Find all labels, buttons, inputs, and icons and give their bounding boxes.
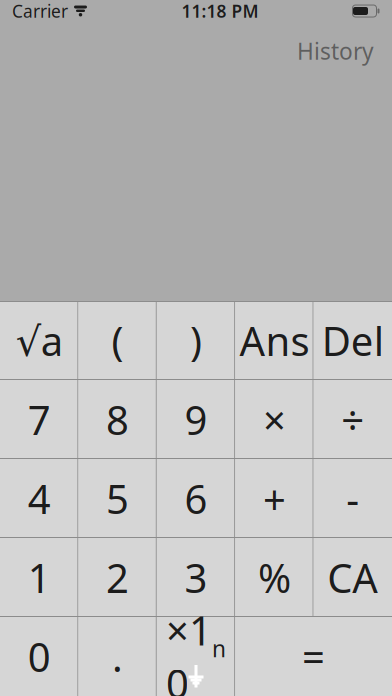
button[interactable]: 0 — [0, 617, 78, 696]
staticText: - — [346, 472, 359, 525]
staticText: History — [297, 36, 374, 66]
button[interactable]: 2 — [78, 538, 157, 617]
staticText: Del — [322, 314, 384, 367]
button[interactable]: ) — [157, 301, 235, 380]
button[interactable]: CA — [314, 538, 392, 617]
staticText: ( — [112, 314, 124, 367]
staticText: 1 — [28, 551, 51, 604]
button[interactable]: Del — [314, 301, 392, 380]
button[interactable]: = — [235, 617, 392, 696]
staticText: Ans — [239, 314, 309, 367]
staticText: = — [302, 630, 325, 683]
staticText: √a — [16, 314, 63, 367]
staticText: Carrier — [12, 0, 68, 22]
staticText: CA — [327, 551, 378, 604]
button[interactable]: 1 — [0, 538, 78, 617]
button[interactable]: % — [235, 538, 314, 617]
button[interactable]: 7 — [0, 380, 78, 459]
staticText: ) — [190, 314, 202, 367]
button[interactable]: 9 — [157, 380, 235, 459]
button[interactable]: + — [235, 459, 314, 538]
staticText: 8 — [106, 393, 129, 446]
staticText: + — [263, 472, 286, 525]
button[interactable]: Ans — [235, 301, 314, 380]
staticText: 5 — [106, 472, 129, 525]
button[interactable]: 3 — [157, 538, 235, 617]
button[interactable]: 5 — [78, 459, 157, 538]
staticText: ÷ — [341, 393, 364, 446]
button[interactable]: - — [314, 459, 392, 538]
staticText: 7 — [28, 393, 51, 446]
staticText: 3 — [184, 551, 207, 604]
button[interactable]: 4 — [0, 459, 78, 538]
staticText: 11:18 PM — [181, 0, 258, 22]
staticText: 4 — [28, 472, 51, 525]
button[interactable]: ( — [78, 301, 157, 380]
staticText: 0 — [28, 630, 51, 683]
staticText: ×10 — [166, 603, 212, 696]
button[interactable]: 6 — [157, 459, 235, 538]
staticText: n — [212, 633, 226, 663]
button[interactable]: History — [287, 30, 384, 72]
button[interactable]: ÷ — [314, 380, 392, 459]
staticText: × — [263, 393, 286, 446]
button[interactable]: 8 — [78, 380, 157, 459]
button[interactable]: . — [78, 617, 157, 696]
button[interactable]: ×10 — [157, 617, 235, 696]
button[interactable]: √a — [0, 301, 78, 380]
button[interactable]: × — [235, 380, 314, 459]
staticText: % — [258, 551, 291, 604]
staticText: . — [112, 630, 123, 683]
staticText: 9 — [184, 393, 207, 446]
staticText: 6 — [184, 472, 207, 525]
staticText: 2 — [106, 551, 129, 604]
